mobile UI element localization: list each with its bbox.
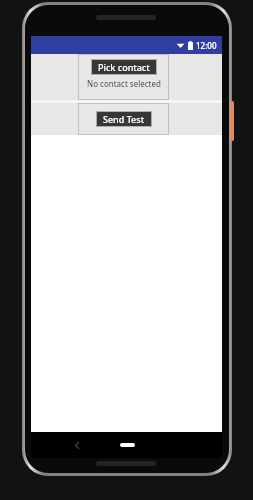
- staticText: No contact selected: [87, 78, 161, 89]
- button[interactable]: Pick contact: [91, 59, 157, 75]
- staticText: Pick contact: [98, 61, 150, 73]
- button[interactable]: Send Test: [96, 111, 152, 127]
- button[interactable]: Home: [114, 437, 140, 453]
- button[interactable]: Send Test: [78, 103, 169, 135]
- button[interactable]: Pick contact: [78, 54, 169, 100]
- button[interactable]: Back: [69, 437, 85, 453]
- staticText: Send Test: [103, 113, 145, 125]
- staticText: 12:00: [196, 40, 217, 51]
